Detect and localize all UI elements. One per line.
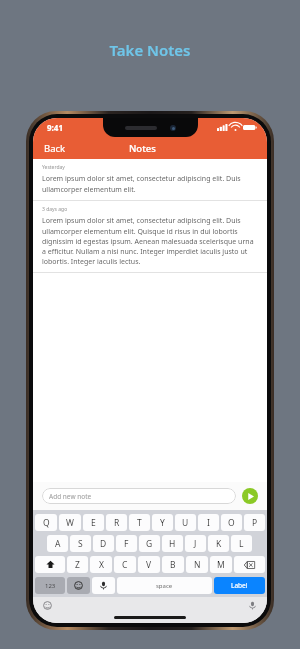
staticText: J bbox=[194, 538, 197, 550]
staticText: C bbox=[122, 559, 128, 571]
button[interactable]: X bbox=[90, 556, 112, 573]
staticText: L bbox=[239, 538, 244, 550]
button[interactable]: W bbox=[59, 514, 81, 531]
button[interactable]: Send note bbox=[242, 488, 258, 504]
staticText: M bbox=[217, 559, 225, 571]
button[interactable]: M bbox=[210, 556, 232, 573]
staticText: R bbox=[114, 517, 120, 529]
staticText: Yesterday bbox=[42, 164, 65, 171]
button[interactable]: R bbox=[106, 514, 127, 531]
staticText: Notes bbox=[129, 142, 156, 155]
button[interactable]: O bbox=[221, 514, 242, 531]
staticText: I bbox=[207, 517, 210, 529]
staticText: H bbox=[169, 538, 176, 550]
button[interactable]: C bbox=[114, 556, 136, 573]
button[interactable]: I bbox=[198, 514, 219, 531]
staticText: Z bbox=[75, 559, 80, 571]
staticText: Add new note bbox=[49, 492, 92, 501]
staticText: E bbox=[91, 517, 96, 529]
button[interactable]: Q bbox=[35, 514, 57, 531]
button[interactable]: Add new note bbox=[42, 488, 236, 504]
button[interactable]: Y bbox=[152, 514, 173, 531]
staticText: B bbox=[170, 559, 176, 571]
staticText: 3 days ago bbox=[42, 206, 68, 213]
button[interactable]: U bbox=[175, 514, 196, 531]
button[interactable]: A bbox=[47, 535, 68, 552]
button[interactable]: Back bbox=[33, 139, 74, 158]
button[interactable]: Z bbox=[67, 556, 88, 573]
button[interactable]: H bbox=[162, 535, 183, 552]
button[interactable]: E bbox=[83, 514, 104, 531]
button[interactable]: space bbox=[117, 577, 212, 594]
staticText: D bbox=[100, 538, 107, 550]
button[interactable]: Backspace bbox=[234, 556, 265, 573]
staticText: K bbox=[216, 538, 222, 550]
staticText: X bbox=[99, 559, 104, 571]
staticText: 9:41 bbox=[47, 122, 63, 133]
staticText: V bbox=[146, 559, 152, 571]
button[interactable]: S bbox=[70, 535, 91, 552]
button[interactable]: J bbox=[185, 535, 206, 552]
staticText: Q bbox=[43, 517, 50, 529]
button[interactable]: Emoji keyboard bbox=[41, 599, 54, 612]
button[interactable]: Label bbox=[214, 577, 265, 594]
staticText: W bbox=[66, 517, 74, 529]
button[interactable]: 3 days ago bbox=[33, 201, 267, 272]
button[interactable]: Dictate bbox=[92, 577, 115, 594]
button[interactable]: K bbox=[208, 535, 229, 552]
staticText: A bbox=[55, 538, 61, 550]
staticText: Lorem ipsum dolor sit amet, consectetur … bbox=[42, 174, 258, 194]
button[interactable]: G bbox=[139, 535, 160, 552]
staticText: space bbox=[156, 582, 173, 590]
staticText: N bbox=[194, 559, 201, 571]
button[interactable]: N bbox=[186, 556, 208, 573]
staticText: O bbox=[228, 517, 235, 529]
button[interactable]: P bbox=[244, 514, 265, 531]
staticText: F bbox=[124, 538, 129, 550]
button[interactable]: L bbox=[231, 535, 252, 552]
staticText: S bbox=[78, 538, 83, 550]
button[interactable]: Emoji bbox=[67, 577, 90, 594]
staticText: Y bbox=[160, 517, 165, 529]
button[interactable]: Yesterday bbox=[33, 159, 267, 200]
staticText: U bbox=[182, 517, 189, 529]
button[interactable]: 123 bbox=[35, 577, 65, 594]
staticText: 123 bbox=[45, 582, 56, 590]
staticText: Label bbox=[231, 581, 248, 590]
staticText: Lorem ipsum dolor sit amet, consectetur … bbox=[42, 216, 258, 266]
button[interactable]: T bbox=[129, 514, 150, 531]
staticText: Take Notes bbox=[109, 40, 191, 60]
staticText: Back bbox=[44, 142, 66, 155]
staticText: T bbox=[137, 517, 142, 529]
staticText: G bbox=[146, 538, 153, 550]
button[interactable]: V bbox=[138, 556, 160, 573]
button[interactable]: F bbox=[116, 535, 137, 552]
button[interactable]: D bbox=[93, 535, 114, 552]
button[interactable]: Dictation bbox=[246, 599, 259, 612]
button[interactable]: Shift bbox=[35, 556, 65, 573]
staticText: P bbox=[252, 517, 258, 529]
button[interactable]: B bbox=[162, 556, 184, 573]
